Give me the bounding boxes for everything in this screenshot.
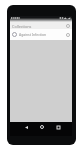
staticText: Against Infection: [19, 32, 47, 37]
button[interactable]: Home: [36, 122, 48, 132]
staticText: Collections: [12, 24, 32, 29]
button[interactable]: Item options: [64, 31, 71, 38]
button[interactable]: More options: [65, 23, 71, 29]
button[interactable]: Back: [20, 122, 32, 132]
button[interactable]: Against Infection: [10, 29, 72, 40]
button[interactable]: Recents: [52, 122, 64, 132]
